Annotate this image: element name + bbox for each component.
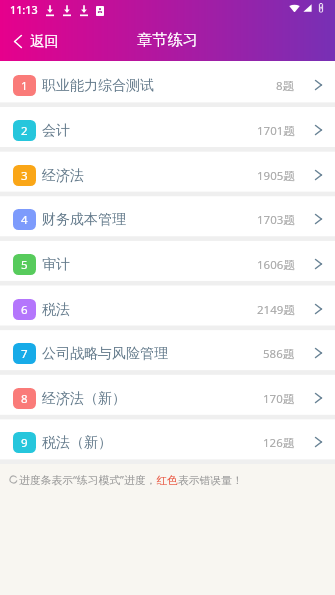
button[interactable]: 6 [0,286,335,326]
staticText: 1 [21,78,28,94]
staticText: 170题 [263,391,295,407]
staticText: 2149题 [257,302,295,318]
staticText: 1905题 [257,168,295,184]
staticText: 章节练习 [137,30,198,49]
staticText: 126题 [263,435,295,451]
staticText: 6 [21,302,28,318]
staticText: 审计 [42,256,70,274]
staticText: 7 [21,346,28,362]
staticText: 11:13 [10,2,38,17]
staticText: 1606题 [257,257,295,273]
staticText: 9 [21,435,28,451]
staticText: 5 [21,257,28,273]
staticText: 进度条表示“练习模式”进度，红色表示错误量！ [19,472,243,487]
button[interactable]: 7 [0,330,335,370]
staticText: 4 [21,212,28,228]
button[interactable]: 5 [0,241,335,281]
staticText: 经济法 [42,167,84,185]
staticText: 8 [21,391,28,407]
staticText: 1703题 [257,212,295,228]
staticText: 2 [21,123,28,139]
staticText: 1701题 [257,123,295,139]
staticText: 经济法（新） [42,390,126,408]
staticText: 586题 [263,346,295,362]
staticText: 会计 [42,122,70,140]
button[interactable]: 8 [0,375,335,415]
staticText: 税法 [42,301,70,319]
staticText: 财务成本管理 [42,211,126,229]
staticText: 职业能力综合测试 [42,77,154,95]
staticText: 公司战略与风险管理 [42,345,168,363]
button[interactable]: 3 [0,152,335,192]
button[interactable]: 2 [0,107,335,147]
button[interactable]: 返回 [0,25,71,57]
button[interactable]: 9 [0,419,335,459]
staticText: 税法（新） [42,434,112,452]
staticText: 返回 [30,32,59,50]
staticText: 8题 [276,78,295,94]
staticText: 3 [21,168,28,184]
button[interactable]: 1 [0,62,335,102]
button[interactable]: 4 [0,196,335,236]
